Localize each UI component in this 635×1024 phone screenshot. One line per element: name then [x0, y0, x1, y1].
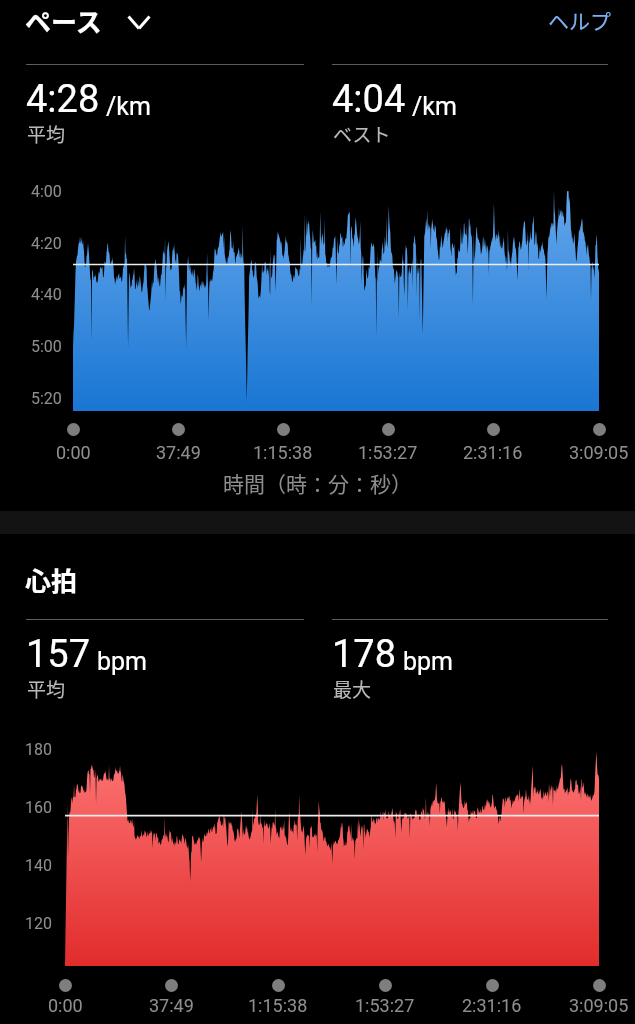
staticText: 5:20	[31, 389, 62, 408]
staticText: 心拍	[25, 561, 78, 599]
staticText: 4:28	[26, 77, 100, 122]
staticText: 1:15:38	[248, 995, 308, 1015]
staticText: 1:15:38	[253, 442, 313, 462]
staticText: 140	[25, 856, 52, 875]
staticText: 178	[332, 632, 397, 677]
staticText: 最大	[333, 675, 372, 703]
staticText: 平均	[27, 675, 66, 703]
staticText: bpm	[403, 647, 453, 676]
staticText: 2:31:16	[463, 442, 523, 462]
staticText: /km	[106, 92, 151, 121]
staticText: ヘルプ	[548, 5, 611, 35]
staticText: 2:31:16	[462, 995, 522, 1015]
staticText: 3:09:05	[569, 442, 629, 462]
staticText: 0:00	[56, 442, 91, 462]
staticText: 平均	[27, 120, 66, 148]
staticText: 4:04	[332, 77, 406, 122]
staticText: ペース	[25, 2, 102, 40]
staticText: 4:40	[31, 285, 62, 304]
staticText: 4:20	[31, 234, 62, 253]
staticText: 4:00	[31, 182, 62, 201]
staticText: /km	[412, 92, 457, 121]
staticText: 0:00	[48, 995, 83, 1015]
other: Change metric	[128, 10, 150, 32]
staticText: 37:49	[149, 995, 194, 1015]
staticText: 1:53:27	[355, 995, 415, 1015]
staticText: 5:00	[31, 337, 62, 356]
staticText: 157	[26, 632, 91, 677]
staticText: ベスト	[333, 120, 391, 148]
staticText: 1:53:27	[358, 442, 418, 462]
button[interactable]: ヘルプ	[548, 5, 611, 35]
staticText: 時間（時：分：秒）	[223, 468, 412, 498]
staticText: bpm	[97, 647, 147, 676]
staticText: 160	[25, 798, 52, 817]
button[interactable]: ペース	[25, 2, 150, 40]
staticText: 180	[25, 740, 52, 759]
staticText: 37:49	[156, 442, 201, 462]
staticText: 3:09:05	[569, 995, 629, 1015]
staticText: 120	[25, 914, 52, 933]
